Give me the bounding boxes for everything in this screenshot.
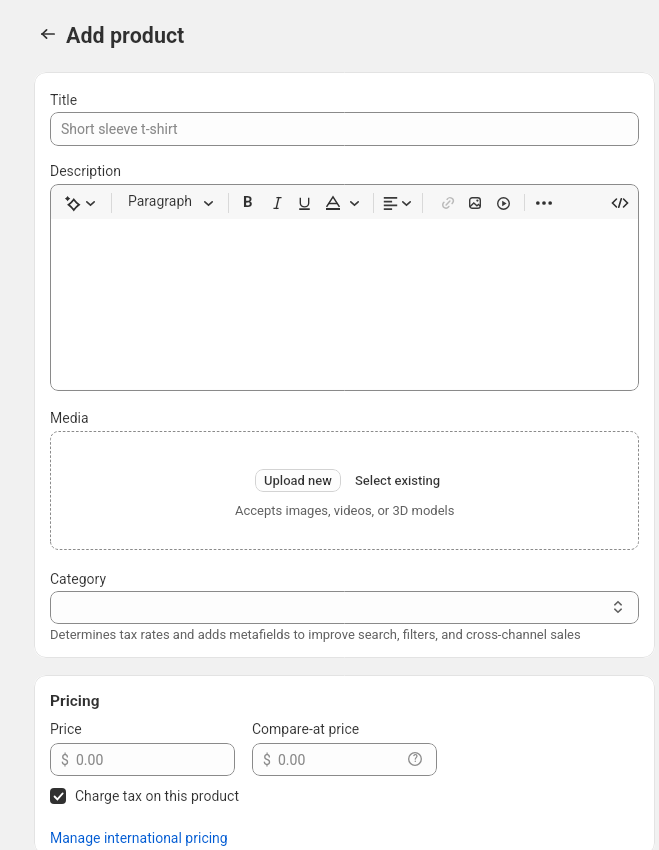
button[interactable]: Insert link xyxy=(442,197,454,209)
button[interactable]: Category xyxy=(50,591,639,624)
button[interactable]: Back xyxy=(36,22,60,46)
button[interactable]: Italic xyxy=(273,197,282,209)
button[interactable]: More options xyxy=(536,201,552,205)
button[interactable]: Select existing xyxy=(355,473,441,488)
staticText: B xyxy=(243,193,253,211)
staticText: Short sleeve t-shirt xyxy=(61,121,178,137)
staticText: Determines tax rates and adds metafields… xyxy=(50,627,581,642)
button[interactable]: Generate with AI xyxy=(65,196,79,210)
staticText: Charge tax on this product xyxy=(75,788,239,804)
button[interactable]: Help xyxy=(408,752,422,766)
staticText: Upload new xyxy=(264,473,332,488)
staticText: $ xyxy=(61,752,69,768)
staticText: ? xyxy=(413,753,418,765)
staticText: Category xyxy=(50,571,107,587)
button[interactable]: Text alignment xyxy=(383,197,398,210)
staticText: Select existing xyxy=(355,473,441,488)
button[interactable]: Charge tax on this product xyxy=(50,788,239,804)
staticText: Add product xyxy=(66,23,185,48)
button[interactable]: Manage international pricing xyxy=(50,830,228,846)
staticText: Price xyxy=(50,721,82,737)
button[interactable]: Underline xyxy=(299,197,310,210)
button[interactable]: Insert video xyxy=(497,197,510,210)
staticText: Compare-at price xyxy=(252,721,360,737)
button[interactable]: Text colour xyxy=(326,196,340,210)
staticText: Description xyxy=(50,163,121,179)
staticText: 0.00 xyxy=(76,752,104,768)
staticText: Paragraph xyxy=(128,193,192,209)
staticText: Media xyxy=(50,410,89,426)
button[interactable]: Insert image xyxy=(469,197,481,209)
button[interactable]: Bold xyxy=(243,193,253,211)
staticText: $ xyxy=(263,752,271,768)
button[interactable]: Upload new xyxy=(255,469,341,492)
staticText: Manage international pricing xyxy=(50,830,228,846)
staticText: Accepts images, videos, or 3D models xyxy=(235,503,455,518)
button[interactable]: Paragraph xyxy=(128,193,192,209)
staticText: 0.00 xyxy=(278,752,306,768)
staticText: Pricing xyxy=(50,692,100,710)
button[interactable]: Show source code xyxy=(612,198,628,208)
staticText: Title xyxy=(50,92,78,108)
